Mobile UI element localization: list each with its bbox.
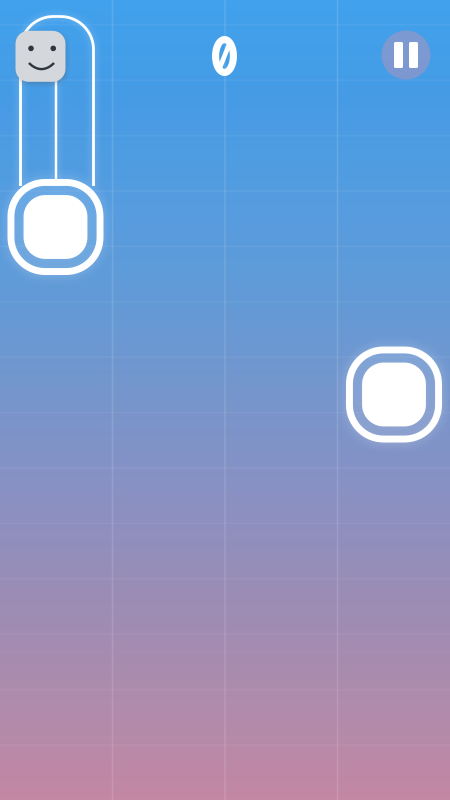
button[interactable]: Pause	[381, 30, 430, 79]
